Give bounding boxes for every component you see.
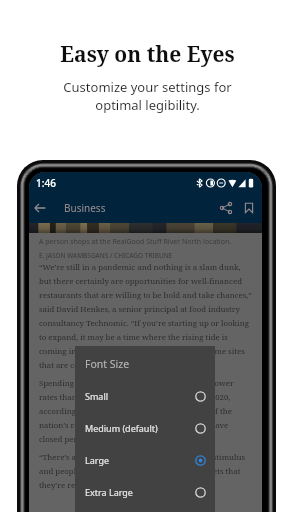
staticText: Spending at restaurants and bars is stil… [39,378,253,444]
button[interactable]: Share [217,199,235,217]
staticText: Font Size [85,357,130,371]
staticText: A person shops at the RealGood Stuff Riv… [39,237,232,247]
button[interactable]: Back [32,200,48,216]
staticText: Medium (default) [85,422,158,434]
staticText: E. JASON WAMBSGANS / CHICAGO TRIBUNE [39,251,173,260]
staticText: Extra Large [85,486,133,498]
button[interactable]: Small [75,380,215,412]
staticText: 1:46 [36,176,56,190]
staticText: “We’re still in a pandemic and nothing i… [39,262,253,370]
staticText: Small [85,390,109,402]
staticText: Large [85,454,110,466]
button[interactable]: Medium (default) [75,412,215,444]
staticText: Easy on the Eyes [60,40,235,69]
staticText: “There’s a lot of money that has been gi… [39,452,253,490]
button[interactable]: Extra Large [75,476,215,508]
staticText: Customize your settings for optimal legi… [63,78,232,114]
button[interactable]: Bookmark [240,199,258,217]
button[interactable]: Large [75,444,215,476]
staticText: Business [64,201,106,215]
